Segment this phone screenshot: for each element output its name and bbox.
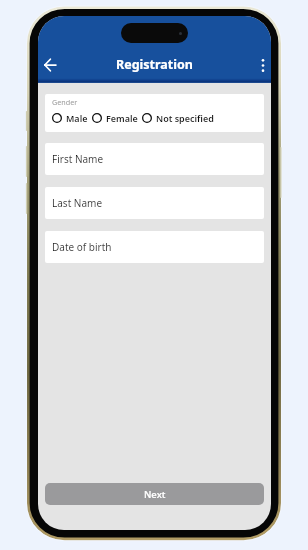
staticText: Male — [66, 112, 88, 124]
button[interactable]: Date of birth — [45, 231, 264, 263]
button[interactable]: Female — [92, 112, 138, 124]
button[interactable]: First Name — [45, 143, 264, 175]
button[interactable]: Next — [45, 483, 264, 505]
staticText: First Name — [52, 152, 104, 166]
button[interactable]: Not specified — [142, 112, 214, 124]
button[interactable]: Last Name — [45, 187, 264, 219]
staticText: Last Name — [52, 196, 103, 210]
staticText: Gender — [52, 97, 78, 107]
button[interactable]: Male — [52, 112, 88, 124]
button[interactable]: Back — [38, 52, 62, 77]
staticText: Not specified — [156, 112, 214, 124]
staticText: Registration — [116, 56, 193, 73]
button[interactable]: Gender — [45, 94, 264, 132]
staticText: Date of birth — [52, 240, 112, 254]
staticText: Female — [106, 112, 138, 124]
button[interactable]: More options — [252, 54, 271, 76]
staticText: Next — [144, 488, 166, 501]
